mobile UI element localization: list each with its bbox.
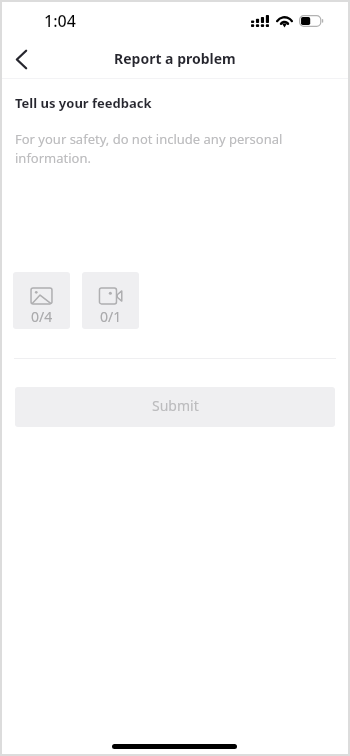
- staticText: 0/4: [31, 307, 53, 326]
- button[interactable]: Submit: [15, 387, 335, 427]
- staticText: Tell us your feedback: [15, 94, 152, 112]
- staticText: Report a problem: [114, 49, 236, 68]
- button[interactable]: Add attachment 0/4: [13, 272, 70, 329]
- staticText: For your safety, do not include any pers…: [15, 130, 297, 167]
- staticText: 1:04: [44, 10, 76, 32]
- staticText: Submit: [152, 396, 199, 415]
- staticText: 0/1: [100, 307, 122, 326]
- button[interactable]: Add attachment 0/1: [82, 272, 139, 329]
- button[interactable]: Back: [2, 40, 40, 78]
